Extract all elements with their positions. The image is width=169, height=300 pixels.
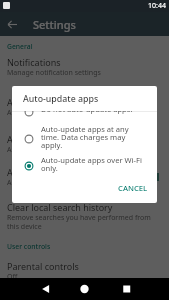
- button[interactable]: Parental controls: [0, 260, 169, 282]
- staticText: App download preference: [7, 133, 117, 145]
- staticText: Clear local search history: [7, 201, 113, 213]
- staticText: Do not auto-update apps.: [41, 111, 133, 114]
- staticText: Ask me every time: [7, 145, 68, 155]
- staticText: CANCEL: [118, 183, 148, 193]
- button[interactable]: Auto-update apps at any time. Data charg…: [12, 124, 157, 151]
- staticText: General: [7, 42, 33, 51]
- staticText: 10:44: [148, 1, 166, 11]
- staticText: User controls: [7, 242, 51, 251]
- staticText: Add widgets to Home screen for new apps: [7, 178, 146, 188]
- button[interactable]: Do not auto-update apps.: [12, 111, 157, 114]
- staticText: Auto-update apps over Wi-Fi only.: [41, 155, 146, 174]
- button[interactable]: Notifications: [0, 56, 169, 78]
- staticText: Auto-update apps at any time. Data charg…: [41, 124, 146, 151]
- staticText: Notifications: [7, 56, 61, 68]
- button[interactable]: Navigate up: [0, 12, 24, 36]
- staticText: Auto-update apps: [7, 96, 83, 108]
- staticText: Manage notification settings: [7, 68, 101, 78]
- staticText: Off: [7, 272, 18, 282]
- button[interactable]: Auto-update apps over Wi-Fi only.: [12, 155, 157, 174]
- button[interactable]: App download preference: [0, 133, 169, 155]
- staticText: Remove searches you have performed from …: [7, 213, 162, 231]
- button[interactable]: CANCEL: [112, 180, 154, 196]
- button[interactable]: Clear local search history: [0, 201, 169, 231]
- staticText: Auto-update apps: [23, 93, 99, 105]
- staticText: Auto-update apps over Wi-Fi only: [7, 108, 116, 118]
- button[interactable]: Auto-update apps: [0, 96, 169, 118]
- button[interactable]: Auto-add widgets: [0, 166, 169, 188]
- staticText: Parental controls: [7, 260, 79, 272]
- staticText: Auto-add widgets: [7, 166, 82, 178]
- staticText: Settings: [33, 17, 76, 32]
